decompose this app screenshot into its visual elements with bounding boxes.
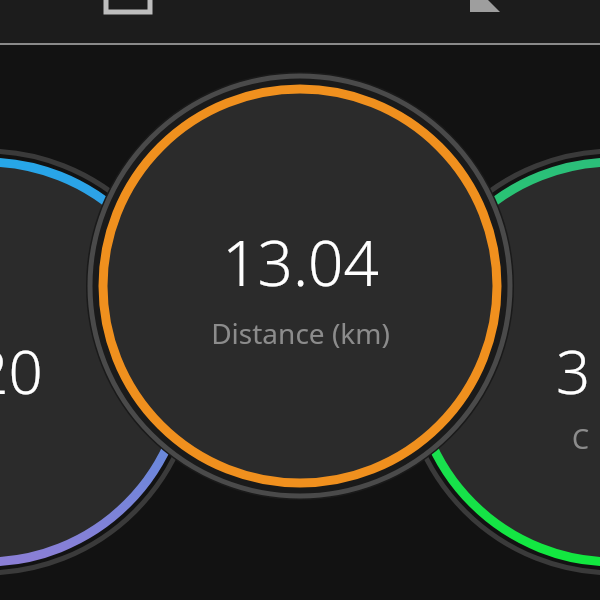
button[interactable]: 13.04 [120, 150, 480, 422]
button[interactable]: Signal [464, 0, 508, 26]
button[interactable]: 20 [0, 330, 68, 402]
staticText: 3 [556, 330, 591, 402]
staticText: Distance (km) [211, 314, 390, 352]
staticText: C [572, 420, 590, 454]
staticText: 20 [0, 330, 43, 402]
staticText: 13.04 [222, 220, 379, 304]
button[interactable]: 3 [556, 330, 600, 402]
button[interactable]: Screen [100, 0, 156, 26]
